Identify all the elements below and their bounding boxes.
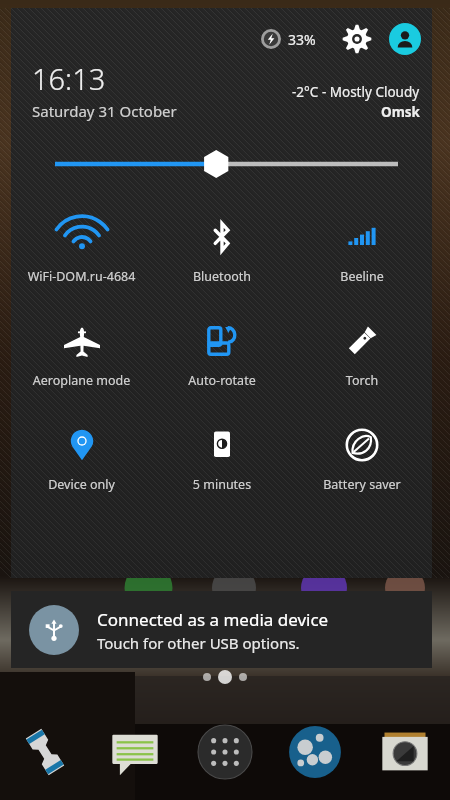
button[interactable]: Beeline <box>292 205 432 309</box>
button[interactable]: Phone <box>0 704 90 800</box>
button[interactable]: 5 minutes <box>152 413 292 517</box>
staticText: Omsk <box>381 103 420 121</box>
button[interactable]: Browser <box>270 704 360 800</box>
staticText: Torch <box>292 372 432 389</box>
button[interactable]: Auto-rotate <box>152 309 292 413</box>
staticText: 16:13 <box>32 59 106 98</box>
button[interactable] <box>11 141 432 187</box>
button[interactable]: Device only <box>11 413 152 517</box>
button[interactable]: Messaging <box>90 704 180 800</box>
staticText: 33% <box>288 30 316 49</box>
button[interactable]: Battery saver <box>292 413 432 517</box>
staticText: Battery saver <box>292 476 432 493</box>
staticText: Bluetooth <box>152 268 292 285</box>
button[interactable]: Torch <box>292 309 432 413</box>
staticText: Device only <box>11 476 152 493</box>
staticText: Beeline <box>292 268 432 285</box>
staticText: Connected as a media device <box>97 608 329 631</box>
button[interactable]: Camera <box>360 704 450 800</box>
staticText: 5 minutes <box>152 476 292 493</box>
staticText: Auto-rotate <box>152 372 292 389</box>
button[interactable]: Aeroplane mode <box>11 309 152 413</box>
staticText: -2°C - Mostly Cloudy <box>292 83 420 101</box>
button[interactable]: Settings <box>340 22 374 56</box>
staticText: Saturday 31 October <box>32 101 177 121</box>
button[interactable]: Connected as a media device <box>11 591 432 668</box>
button[interactable]: Apps <box>180 704 270 800</box>
staticText: Touch for other USB options. <box>97 633 300 653</box>
button[interactable]: Bluetooth <box>152 205 292 309</box>
staticText: WiFi-DOM.ru-4684 <box>11 268 152 285</box>
button[interactable]: User profile <box>388 22 422 56</box>
button[interactable]: WiFi-DOM.ru-4684 <box>11 205 152 309</box>
staticText: Aeroplane mode <box>11 372 152 389</box>
